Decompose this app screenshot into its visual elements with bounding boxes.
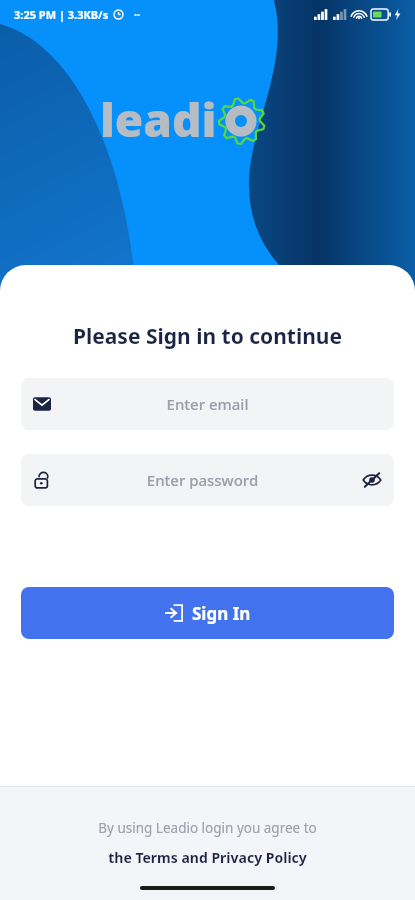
staticText: the Terms and Privacy Policy xyxy=(108,848,307,867)
button[interactable]: Sign In xyxy=(21,587,394,639)
button[interactable]: Enter email xyxy=(21,378,394,430)
staticText: leadi xyxy=(100,88,217,151)
staticText: 3:25 PM | 3.3KB/s xyxy=(14,7,109,22)
button[interactable]: Toggle password visibility xyxy=(354,462,390,498)
button[interactable]: the Terms and Privacy Policy xyxy=(108,848,307,867)
staticText: Enter password xyxy=(51,470,354,490)
button[interactable]: Enter password xyxy=(21,454,394,506)
staticText: By using Leadio login you agree to xyxy=(98,819,317,837)
staticText: Enter email xyxy=(51,394,364,414)
staticText: Please Sign in to continue xyxy=(0,322,415,351)
staticText: ·· xyxy=(134,7,141,22)
staticText: Sign In xyxy=(192,602,251,625)
